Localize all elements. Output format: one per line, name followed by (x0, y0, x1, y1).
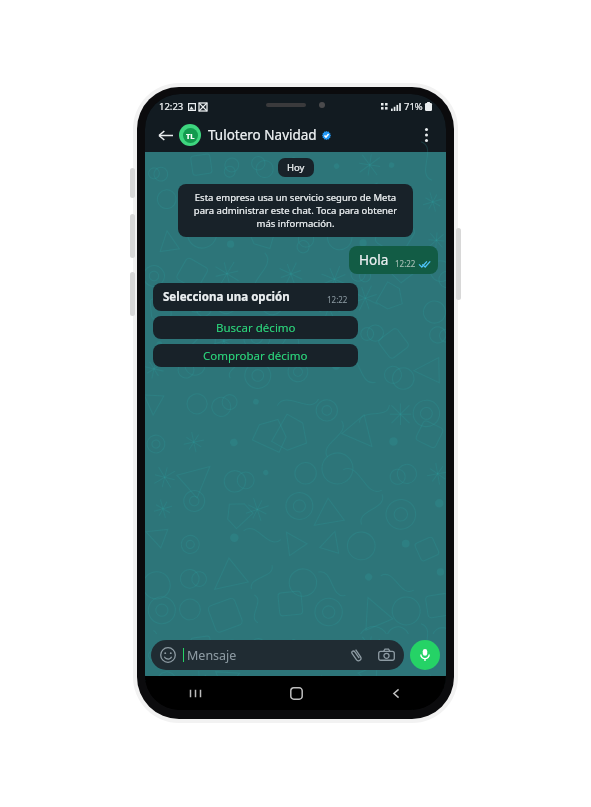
staticText: 12:22 (395, 258, 416, 269)
staticText: 71% (404, 100, 423, 113)
button[interactable]: Back (346, 676, 446, 710)
staticText: TL (186, 131, 195, 141)
button[interactable]: More options (414, 123, 438, 147)
staticText: Mensaje (187, 647, 237, 664)
staticText: 12:22 (327, 294, 348, 305)
staticText: Hoy (287, 161, 305, 174)
staticText: Buscar décimo (216, 320, 296, 336)
button[interactable]: Emoji (160, 647, 176, 663)
button[interactable]: Buscar décimo (153, 316, 358, 339)
button[interactable]: Comprobar décimo (153, 344, 358, 367)
button[interactable]: Tulotero Navidad (208, 126, 414, 144)
button[interactable]: Profile picture (179, 124, 201, 146)
button[interactable]: Hoy (287, 161, 305, 174)
button[interactable]: Home (246, 676, 346, 710)
staticText: 12:23 (159, 100, 184, 113)
button[interactable]: Attach (349, 647, 365, 663)
button[interactable]: Selecciona una opción (163, 289, 348, 305)
staticText: Tulotero Navidad (208, 126, 317, 144)
button[interactable]: Hola (359, 251, 430, 269)
button[interactable]: Esta empresa usa un servicio seguro de M… (189, 191, 402, 230)
staticText: Comprobar décimo (203, 348, 308, 364)
staticText: Selecciona una opción (163, 289, 290, 305)
button[interactable]: Voice message (410, 640, 440, 670)
staticText: Esta empresa usa un servicio seguro de M… (189, 191, 402, 230)
button[interactable]: Emoji (160, 640, 395, 670)
button[interactable]: Recents (145, 676, 246, 710)
button[interactable]: Camera (378, 647, 395, 664)
button[interactable]: Back (153, 123, 177, 147)
staticText: Hola (359, 251, 389, 269)
